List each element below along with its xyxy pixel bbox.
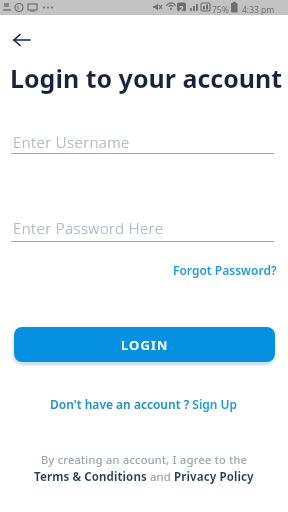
button[interactable]	[8, 28, 36, 52]
staticText: By creating an account, I agree to the	[41, 452, 248, 467]
staticText: LOGIN	[121, 336, 169, 354]
button[interactable]: Forgot Password?	[173, 262, 277, 278]
staticText: 2	[179, 3, 184, 14]
staticText: Login to your account	[10, 61, 283, 95]
staticText: Don't have an account ? Sign Up	[50, 396, 238, 412]
button[interactable]: Don't have an account ? Sign Up	[0, 396, 288, 412]
button[interactable]: LOGIN	[14, 327, 275, 362]
staticText: Enter Password Here	[13, 218, 164, 238]
button[interactable]: Terms & Conditions and Privacy Policy	[0, 469, 288, 485]
staticText: Enter Username	[13, 132, 130, 152]
staticText: 4:33 pm	[242, 4, 275, 16]
staticText: 75%	[212, 4, 229, 16]
staticText: Terms & Conditions and Privacy Policy	[34, 469, 254, 485]
